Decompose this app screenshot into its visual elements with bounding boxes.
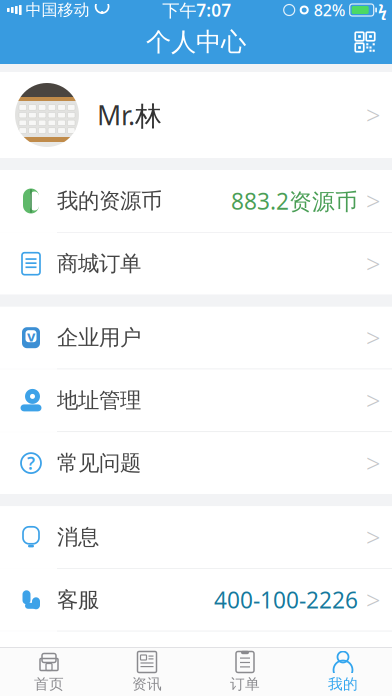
staticText: 常见问题: [57, 450, 141, 476]
staticText: >: [366, 321, 380, 354]
staticText: v: [27, 326, 35, 345]
staticText: 商城订单: [57, 251, 141, 277]
button[interactable]: 首页: [0, 648, 98, 696]
staticText: 设置: [57, 649, 99, 676]
button[interactable]: 设置: [0, 631, 392, 693]
button[interactable]: 订单: [196, 648, 294, 696]
button[interactable]: Mr.林: [0, 72, 392, 158]
button[interactable]: 我的: [294, 648, 392, 696]
button[interactable]: 资讯: [98, 648, 196, 696]
button[interactable]: 消息: [0, 506, 392, 568]
staticText: ϟ: [378, 0, 387, 21]
staticText: >: [366, 646, 380, 679]
button[interactable]: 扫一扫: [348, 25, 382, 59]
button[interactable]: 地址管理: [0, 369, 392, 431]
staticText: 我的资源币: [57, 188, 162, 214]
button[interactable]: 商城订单: [0, 233, 392, 295]
staticText: 企业用户: [57, 325, 141, 351]
staticText: >: [366, 446, 380, 480]
staticText: 个人中心: [146, 26, 246, 57]
button[interactable]: ?: [0, 432, 392, 494]
button[interactable]: 我的资源币: [0, 170, 392, 232]
staticText: 首页: [34, 675, 64, 693]
staticText: 我的: [328, 675, 358, 693]
staticText: 400-100-2226: [214, 585, 358, 615]
staticText: ?: [27, 452, 35, 475]
staticText: 82%: [314, 0, 346, 21]
staticText: >: [366, 98, 380, 132]
staticText: Mr.林: [97, 97, 162, 133]
staticText: 客服: [57, 587, 99, 613]
staticText: 地址管理: [57, 387, 141, 413]
button[interactable]: 客服: [0, 569, 392, 631]
staticText: >: [366, 583, 380, 617]
staticText: 中国移动: [26, 0, 90, 20]
staticText: >: [366, 384, 380, 417]
staticText: 883.2资源币: [231, 186, 358, 216]
staticText: >: [366, 520, 380, 554]
staticText: 下午7:07: [162, 0, 231, 21]
staticText: 消息: [57, 524, 99, 550]
staticText: 订单: [230, 675, 260, 693]
staticText: >: [366, 184, 380, 218]
staticText: 资讯: [132, 675, 162, 693]
button[interactable]: v: [0, 307, 392, 369]
staticText: >: [366, 247, 380, 280]
